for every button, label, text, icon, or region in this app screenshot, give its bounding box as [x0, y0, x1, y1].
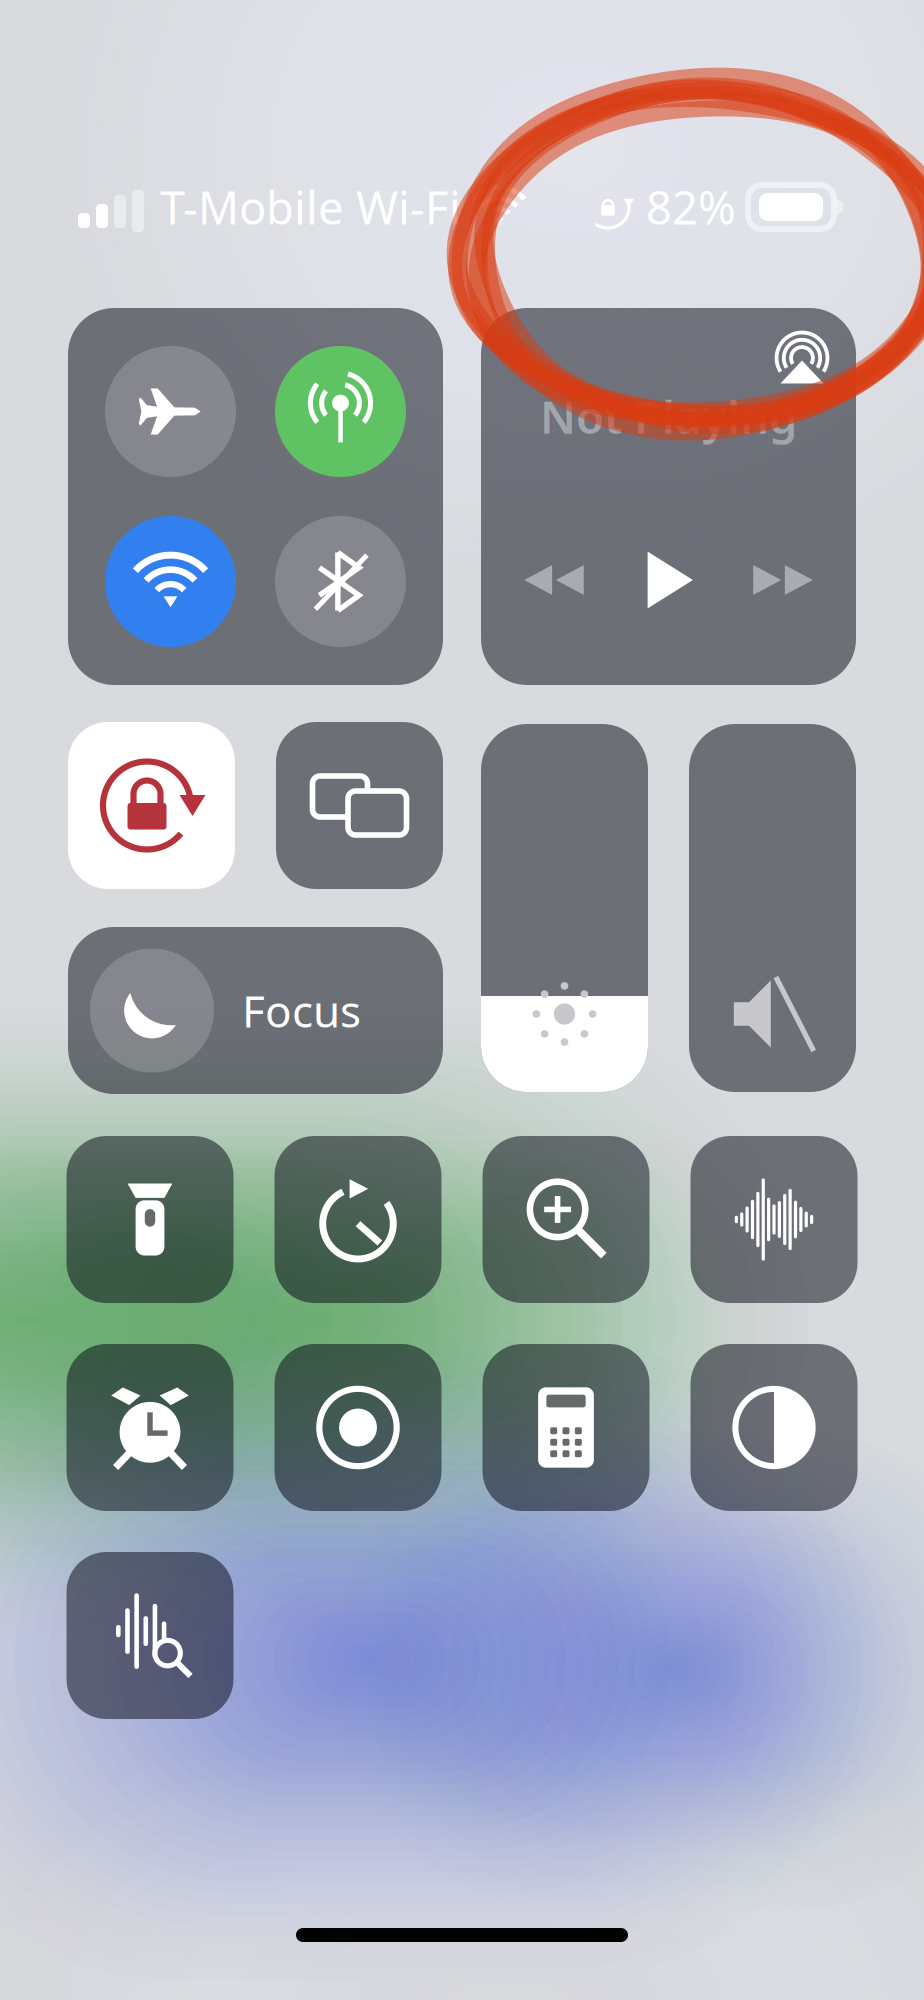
button[interactable]: Airplane Mode	[105, 346, 236, 477]
button[interactable]: Focus	[68, 927, 443, 1094]
button[interactable]: Flashlight	[66, 1136, 233, 1303]
button[interactable]: Volume	[689, 724, 856, 1092]
button[interactable]: Fast Forward	[752, 549, 814, 611]
button[interactable]: Magnifier	[482, 1136, 649, 1303]
staticText: Not Playing	[540, 386, 797, 446]
button[interactable]: Timer	[274, 1136, 441, 1303]
button[interactable]: Wi-Fi	[105, 516, 236, 647]
button[interactable]: AirPlay	[774, 330, 830, 386]
button[interactable]: Sound Recognition	[690, 1136, 857, 1303]
staticText: T-Mobile Wi-Fi	[160, 177, 461, 237]
staticText: Focus	[242, 981, 361, 1040]
button[interactable]: Play	[639, 551, 697, 609]
button[interactable]: Alarm	[66, 1344, 233, 1511]
button[interactable]: Rewind	[523, 549, 585, 611]
button[interactable]: Cellular Data	[275, 346, 406, 477]
staticText: 82%	[646, 177, 736, 237]
button[interactable]: Rotation Lock	[68, 722, 235, 889]
button[interactable]: Dark Mode	[690, 1344, 857, 1511]
button[interactable]: Screen Mirroring	[276, 722, 443, 889]
button[interactable]: Bluetooth	[275, 516, 406, 647]
button[interactable]: Screen Recording	[274, 1344, 441, 1511]
button[interactable]: Brightness	[481, 724, 648, 1092]
button[interactable]: Music Recognition	[66, 1552, 233, 1719]
button[interactable]: Calculator	[482, 1344, 649, 1511]
